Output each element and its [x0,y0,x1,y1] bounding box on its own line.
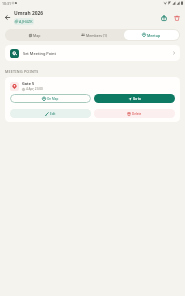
staticText: On Map [47,97,59,101]
button[interactable]: Delete [94,109,175,118]
button[interactable]: On Map [10,94,91,103]
staticText: Umrah 2026 [14,10,44,17]
button[interactable]: Share [157,11,170,24]
button[interactable]: Back [0,10,14,24]
button[interactable]: Set Meeting Point [5,45,180,61]
staticText: Members (1) [86,33,107,38]
button[interactable]: Map [6,30,63,40]
staticText: Delete [132,112,142,116]
staticText: Set Meeting Point [23,51,57,56]
staticText: Gate 5 [22,81,35,86]
button[interactable]: AJH4ZK [14,18,34,25]
button[interactable]: Delete trip [170,11,183,24]
button[interactable]: Go to [94,94,175,103]
button[interactable]: Edit [10,109,91,118]
button[interactable]: Members (1) [63,30,124,40]
staticText: 10:31 [2,1,11,6]
staticText: Map [33,33,41,38]
staticText: Edit [50,112,56,116]
staticText: Go to [133,97,141,101]
staticText: Meetup [147,33,161,38]
staticText: AJH4ZK [19,19,33,24]
staticText: MEETING POINTS [5,69,39,74]
button[interactable]: Meetup [124,30,179,40]
staticText: 4 Apr, 23:00 [26,87,43,91]
